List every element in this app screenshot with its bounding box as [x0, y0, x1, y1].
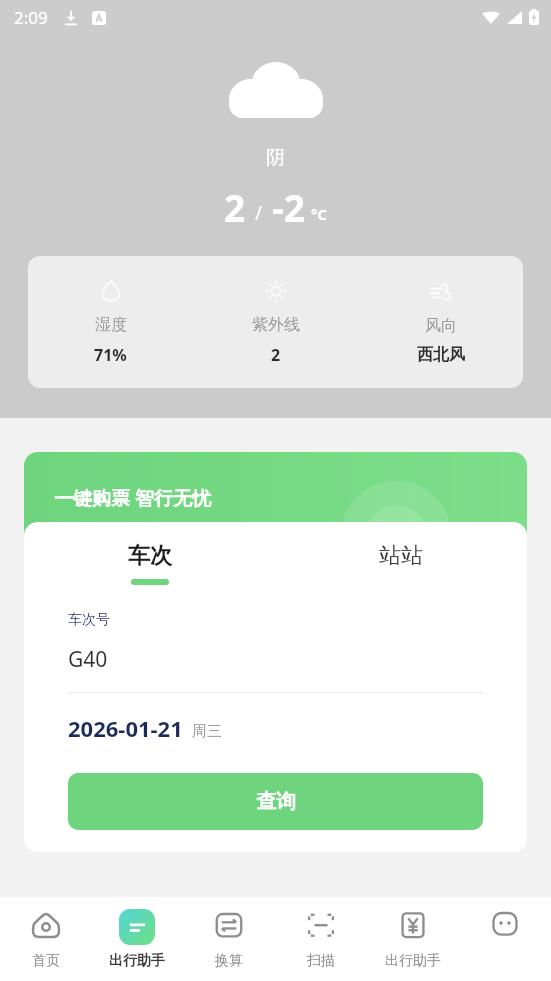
staticText: 查询 [256, 789, 296, 814]
staticText: 站站 [379, 542, 423, 570]
button[interactable]: 换算 [183, 897, 275, 981]
button[interactable]: 出行助手 [367, 897, 459, 981]
staticText: 首页 [32, 952, 60, 970]
button[interactable]: 消息 [459, 897, 551, 981]
staticText: 71% [94, 344, 127, 366]
staticText: -2 [272, 182, 306, 232]
button[interactable]: 湿度 [28, 256, 193, 388]
staticText: 2:09 [14, 6, 48, 29]
staticText: 2 [271, 344, 281, 366]
staticText: 扫描 [307, 952, 335, 970]
staticText: 一键购票 智行无忧 [54, 485, 211, 511]
staticText: 周三 [192, 722, 222, 741]
button[interactable]: 查询 [68, 773, 483, 830]
button[interactable]: 车次 [24, 542, 275, 585]
button[interactable]: 首页 [0, 897, 91, 981]
staticText: 风向 [425, 316, 457, 336]
staticText: / [255, 200, 263, 226]
staticText: °C [311, 204, 327, 224]
staticText: 换算 [215, 952, 243, 970]
staticText: 紫外线 [252, 315, 300, 335]
button[interactable]: 站站 [275, 542, 527, 585]
staticText: 湿度 [95, 315, 127, 335]
staticText: 阴 [266, 146, 285, 170]
staticText: 出行助手 [109, 952, 165, 970]
button[interactable]: 风向 [358, 256, 523, 388]
staticText: 车次 [128, 542, 172, 570]
staticText: 2 [224, 182, 246, 232]
staticText: 2026-01-21 [68, 713, 183, 743]
button[interactable]: 扫描 [275, 897, 367, 981]
staticText: 出行助手 [385, 952, 441, 970]
staticText: 车次号 [68, 611, 110, 629]
staticText: G40 [68, 645, 108, 674]
button[interactable]: 出行助手 [91, 897, 183, 981]
button[interactable]: 紫外线 [193, 256, 358, 388]
staticText: 西北风 [417, 345, 465, 365]
